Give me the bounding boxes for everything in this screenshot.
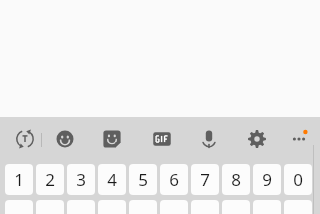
staticText: 9 <box>262 168 272 191</box>
staticText: 3 <box>76 168 86 191</box>
button[interactable]: 8 <box>222 164 250 195</box>
staticText: 2 <box>45 168 55 191</box>
button[interactable]: GIF <box>143 120 181 158</box>
button[interactable]: 6 <box>160 164 188 195</box>
button[interactable]: More options <box>280 120 318 158</box>
button[interactable] <box>222 200 250 214</box>
staticText: 1 <box>14 168 24 191</box>
button[interactable] <box>284 200 312 214</box>
staticText: 6 <box>169 168 179 191</box>
staticText: 0 <box>293 168 303 191</box>
button[interactable]: 4 <box>98 164 126 195</box>
button[interactable] <box>98 200 126 214</box>
button[interactable] <box>36 200 64 214</box>
button[interactable] <box>129 200 157 214</box>
button[interactable]: Settings <box>238 120 276 158</box>
button[interactable]: 1 <box>5 164 33 195</box>
button[interactable]: 9 <box>253 164 281 195</box>
staticText: 7 <box>200 168 210 191</box>
button[interactable]: Translate <box>6 120 44 158</box>
button[interactable] <box>5 200 33 214</box>
button[interactable] <box>253 200 281 214</box>
button[interactable]: Voice input <box>190 120 228 158</box>
button[interactable]: 2 <box>36 164 64 195</box>
button[interactable]: 7 <box>191 164 219 195</box>
staticText: 4 <box>107 168 117 191</box>
button[interactable]: Stickers <box>93 120 131 158</box>
staticText: 5 <box>138 168 148 191</box>
button[interactable]: 5 <box>129 164 157 195</box>
button[interactable]: 0 <box>284 164 312 195</box>
button[interactable]: 3 <box>67 164 95 195</box>
button[interactable] <box>191 200 219 214</box>
staticText: 8 <box>231 168 241 191</box>
button[interactable] <box>160 200 188 214</box>
button[interactable]: Emoji <box>46 120 84 158</box>
button[interactable] <box>67 200 95 214</box>
